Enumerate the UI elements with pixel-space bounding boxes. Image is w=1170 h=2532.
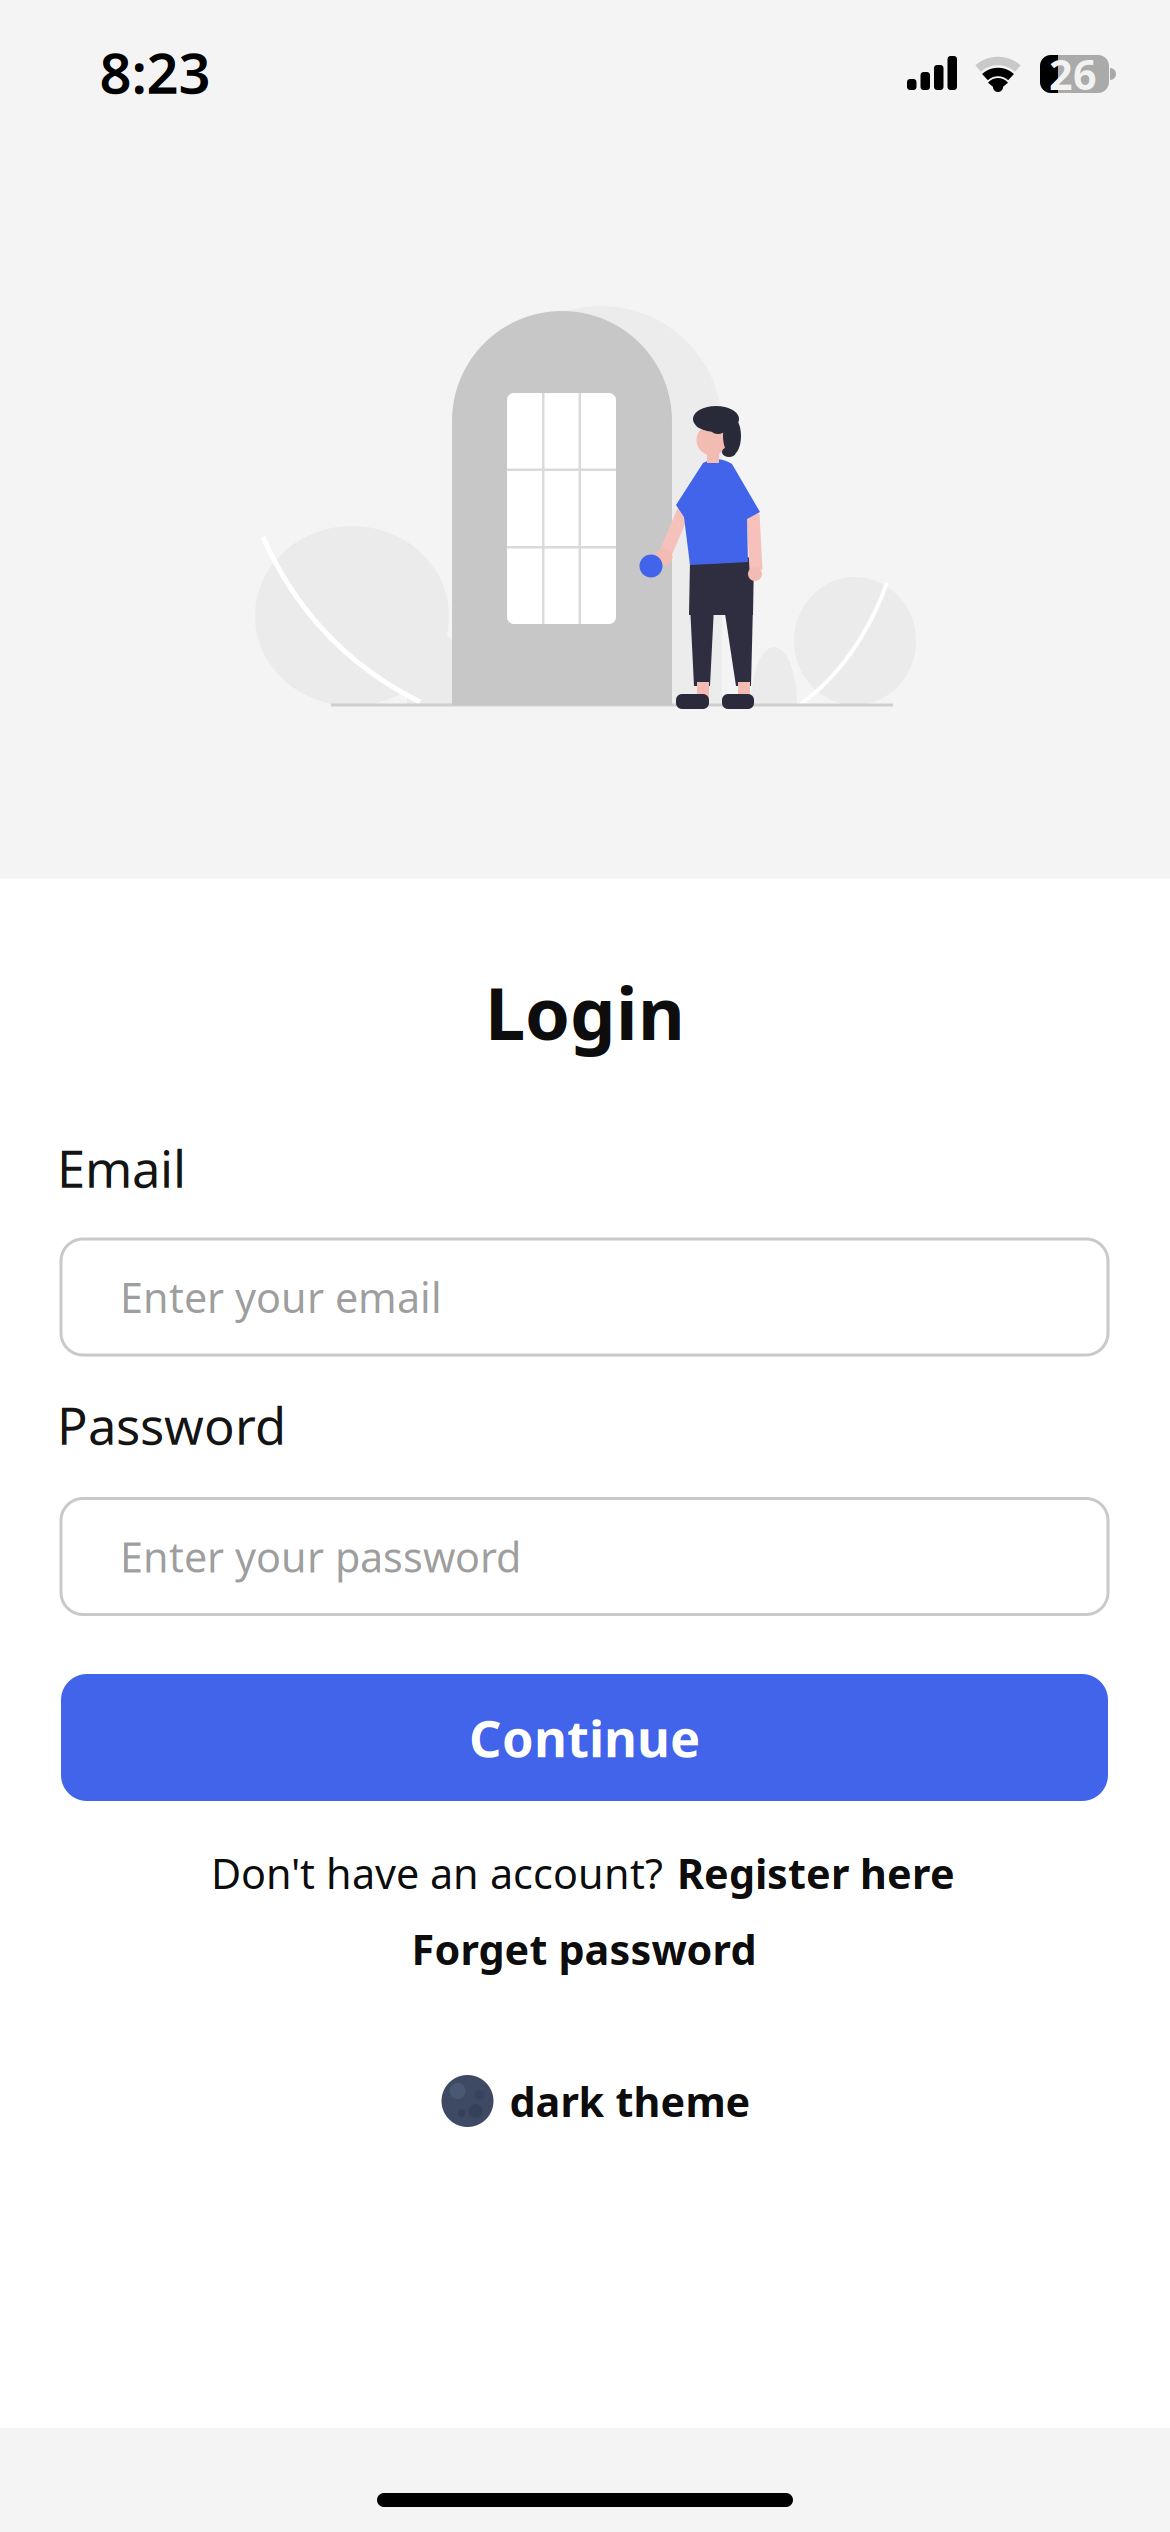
button[interactable]: Forget password	[411, 1922, 756, 1976]
staticText: 26	[1049, 47, 1097, 101]
staticText: Continue	[469, 1704, 700, 1771]
staticText: Register here	[677, 1846, 955, 1900]
staticText: dark theme	[509, 2074, 750, 2128]
button[interactable]: Enter your password	[61, 1498, 1108, 1614]
staticText: 8:23	[99, 35, 210, 109]
staticText: Enter your email	[120, 1270, 442, 1324]
staticText: Email	[57, 1134, 186, 1202]
staticText: Forget password	[411, 1922, 756, 1976]
button[interactable]: Continue	[61, 1674, 1108, 1801]
staticText: Don't have an account?	[211, 1846, 663, 1900]
button[interactable]: Register here	[677, 1846, 955, 1900]
button[interactable]: Enter your email	[61, 1239, 1108, 1355]
button[interactable]: dark theme	[441, 2074, 750, 2128]
staticText: Enter your password	[120, 1529, 521, 1584]
staticText: Password	[57, 1391, 286, 1459]
staticText: Login	[485, 964, 685, 1060]
